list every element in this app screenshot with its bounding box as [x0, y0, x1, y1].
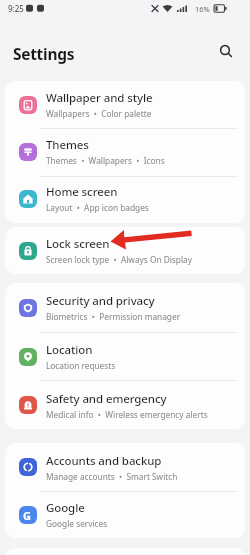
staticText: Safety and emergency: [46, 391, 167, 407]
button[interactable]: Safety and emergency: [5, 381, 245, 429]
staticText: Home screen: [46, 184, 118, 200]
button[interactable]: Themes: [5, 128, 245, 175]
staticText: 9:25: [8, 3, 24, 14]
staticText: 16%: [195, 4, 210, 14]
staticText: Security and privacy: [46, 293, 155, 309]
staticText: Location requests: [46, 360, 116, 371]
button[interactable]: Google: [5, 491, 245, 538]
staticText: Accounts and backup: [46, 453, 162, 469]
button[interactable]: Security and privacy: [5, 283, 245, 332]
staticText: Wallpaper and style: [46, 90, 153, 106]
staticText: Medical info • Wireless emergency alerts: [46, 409, 208, 420]
button[interactable]: Wallpaper and style: [5, 81, 245, 128]
staticText: Themes • Wallpapers • Icons: [46, 155, 165, 166]
button[interactable]: Home screen: [5, 175, 245, 222]
staticText: G: [23, 508, 31, 523]
staticText: Google services: [46, 518, 108, 529]
staticText: Screen lock type • Always On Display: [46, 254, 192, 265]
staticText: Themes: [46, 137, 89, 153]
staticText: Biometrics • Permission manager: [46, 311, 181, 322]
button[interactable]: Lock screen: [5, 227, 245, 274]
staticText: Manage accounts • Smart Switch: [46, 471, 178, 482]
button[interactable]: Accounts and backup: [5, 443, 245, 491]
staticText: Settings: [13, 43, 75, 64]
button[interactable]: Location: [5, 332, 245, 381]
staticText: Location: [46, 342, 93, 358]
staticText: Layout • App icon badges: [46, 202, 149, 213]
button[interactable]: [215, 40, 237, 62]
staticText: Google: [46, 500, 85, 516]
staticText: Lock screen: [46, 236, 110, 252]
staticText: Wallpapers • Color palette: [46, 108, 152, 119]
